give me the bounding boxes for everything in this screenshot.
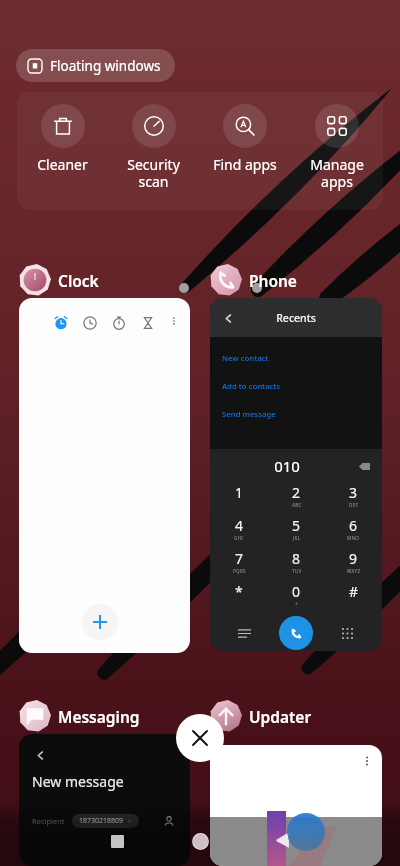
- button[interactable]: Recents: [99, 823, 135, 859]
- staticText: 18730218809: [79, 816, 124, 826]
- button[interactable]: 6: [325, 516, 382, 541]
- other: Menu: [238, 627, 251, 640]
- staticText: Recipient: [32, 816, 65, 826]
- staticText: JKL: [293, 535, 301, 541]
- button[interactable]: Clock: [19, 264, 99, 296]
- staticText: Send message: [222, 409, 276, 420]
- button[interactable]: More options: [170, 317, 178, 330]
- button[interactable]: Messaging: [19, 700, 140, 732]
- staticText: 2: [292, 483, 301, 502]
- staticText: *: [235, 582, 243, 601]
- button[interactable]: Backspace: [355, 457, 373, 475]
- button[interactable]: More options: [357, 751, 377, 771]
- button[interactable]: Security scan: [108, 92, 199, 191]
- staticText: Security scan: [127, 155, 180, 191]
- staticText: Cleaner: [37, 155, 88, 174]
- other: Dialpad: [341, 627, 354, 640]
- button[interactable]: 9: [325, 549, 382, 574]
- button[interactable]: *: [210, 582, 268, 601]
- button[interactable]: Add alarm: [82, 604, 118, 640]
- staticText: 9: [349, 549, 358, 568]
- button[interactable]: Clock: [83, 316, 97, 330]
- button[interactable]: 2: [268, 483, 325, 508]
- staticText: New message: [32, 772, 124, 791]
- button[interactable]: 0: [268, 582, 325, 607]
- button[interactable]: New contact: [210, 348, 382, 369]
- button[interactable]: 8: [268, 549, 325, 574]
- staticText: DEF: [349, 502, 359, 508]
- button[interactable]: Cleaner: [17, 92, 108, 174]
- button[interactable]: 18730218809: [72, 814, 139, 828]
- staticText: Manage apps: [310, 155, 364, 191]
- button[interactable]: Manage apps: [291, 92, 383, 191]
- button[interactable]: Back: [219, 309, 237, 327]
- button[interactable]: Timer: [112, 316, 126, 330]
- button[interactable]: Back: [264, 823, 300, 859]
- staticText: #: [349, 582, 359, 601]
- button[interactable]: Stopwatch: [141, 316, 155, 330]
- staticText: 8: [292, 549, 301, 568]
- staticText: 5: [292, 516, 301, 535]
- staticText: ABC: [292, 502, 302, 508]
- button[interactable]: Clear all: [176, 714, 224, 762]
- staticText: 010: [210, 456, 364, 476]
- button[interactable]: Back: [31, 746, 49, 764]
- button[interactable]: Find apps: [199, 92, 291, 174]
- staticText: New contact: [222, 353, 269, 364]
- button[interactable]: More options: [210, 745, 382, 866]
- button[interactable]: Phone: [210, 264, 297, 296]
- staticText: MNO: [347, 535, 360, 541]
- staticText: Updater: [249, 706, 312, 727]
- button[interactable]: Call: [279, 616, 313, 650]
- button[interactable]: Add to contacts: [210, 376, 382, 397]
- staticText: 3: [349, 483, 358, 502]
- staticText: PQRS: [233, 568, 246, 574]
- staticText: Messaging: [58, 706, 140, 727]
- staticText: 4: [235, 516, 244, 535]
- button[interactable]: Home: [182, 823, 218, 859]
- button[interactable]: 3: [325, 483, 382, 508]
- button[interactable]: 7: [210, 549, 268, 574]
- button[interactable]: Floating windows: [16, 49, 175, 82]
- staticText: ×: [128, 817, 132, 825]
- staticText: Add to contacts: [222, 381, 281, 392]
- staticText: TUV: [292, 568, 302, 574]
- staticText: Clock: [58, 270, 99, 291]
- staticText: 6: [349, 516, 358, 535]
- button[interactable]: Alarm: [54, 316, 68, 330]
- button[interactable]: #: [325, 582, 382, 601]
- staticText: GHI: [234, 535, 244, 541]
- staticText: 1: [235, 483, 244, 502]
- staticText: WXYZ: [347, 568, 361, 574]
- button[interactable]: Alarm: [19, 298, 190, 653]
- staticText: Floating windows: [50, 57, 161, 75]
- staticText: Find apps: [213, 155, 277, 174]
- button[interactable]: Back: [210, 298, 382, 651]
- button[interactable]: Send message: [210, 404, 382, 425]
- button[interactable]: Updater: [210, 700, 312, 732]
- staticText: 0: [292, 582, 301, 601]
- button[interactable]: Back: [19, 734, 190, 866]
- button[interactable]: 4: [210, 516, 268, 541]
- button[interactable]: 5: [268, 516, 325, 541]
- staticText: Recents: [237, 311, 355, 325]
- staticText: Phone: [249, 270, 297, 291]
- staticText: 7: [235, 549, 244, 568]
- staticText: +: [295, 601, 298, 607]
- button[interactable]: Contacts: [161, 813, 177, 829]
- button[interactable]: 1: [210, 483, 268, 502]
